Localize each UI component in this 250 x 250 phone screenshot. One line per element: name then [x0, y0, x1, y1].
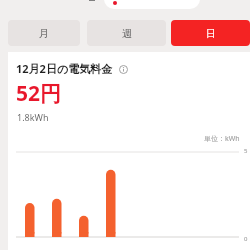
button[interactable]: 日 — [171, 20, 250, 46]
staticText: 12月2日の電気料金 — [16, 61, 113, 76]
staticText: 5 — [244, 147, 248, 155]
button[interactable]: 月 — [8, 20, 80, 46]
button[interactable] — [104, 0, 200, 9]
button[interactable]: 電気料金の説明 — [117, 63, 129, 75]
staticText: 月 — [39, 27, 49, 40]
staticText: 日 — [206, 27, 216, 40]
button[interactable]: 週 — [87, 20, 166, 46]
staticText: 週 — [122, 27, 132, 40]
staticText: 単位：kWh — [204, 134, 240, 144]
staticText: 52円 — [16, 79, 62, 108]
staticText: 0 — [244, 235, 248, 243]
staticText: 1.8kWh — [17, 111, 49, 123]
